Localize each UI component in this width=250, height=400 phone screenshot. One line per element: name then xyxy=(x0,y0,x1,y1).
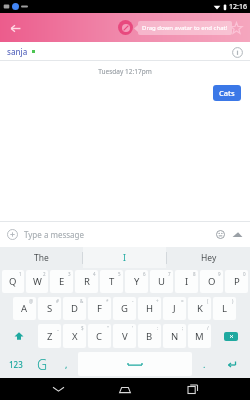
staticText: I xyxy=(123,252,126,264)
staticText: & xyxy=(80,298,84,304)
button[interactable]: G xyxy=(113,297,136,320)
staticText: 2 xyxy=(43,271,46,277)
button[interactable]: , xyxy=(55,352,77,376)
staticText: ; xyxy=(182,325,184,331)
button[interactable]: E xyxy=(50,270,73,293)
button[interactable]: Favorite xyxy=(226,18,246,38)
button[interactable]: 123 xyxy=(1,352,30,376)
staticText: U xyxy=(158,275,165,288)
staticText: * xyxy=(106,298,109,304)
staticText: H xyxy=(146,302,154,315)
button[interactable]: D xyxy=(63,297,86,320)
button[interactable]: J xyxy=(163,297,186,320)
staticText: 9 xyxy=(218,271,221,277)
button[interactable]: Back xyxy=(48,379,68,399)
button[interactable]: W xyxy=(26,270,48,293)
staticText: : xyxy=(157,325,159,331)
staticText: 6 xyxy=(143,271,146,277)
staticText: ) xyxy=(232,298,234,304)
button[interactable]: I xyxy=(83,247,166,268)
button[interactable]: Google voice xyxy=(30,352,55,376)
staticText: 1 xyxy=(19,271,22,277)
staticText: sanja xyxy=(7,46,28,57)
button[interactable]: O xyxy=(200,270,223,293)
button[interactable]: Z xyxy=(38,324,61,348)
button[interactable]: Send xyxy=(231,228,244,241)
button[interactable]: V xyxy=(113,324,136,348)
staticText: , xyxy=(65,358,68,370)
staticText: V xyxy=(122,330,128,343)
button[interactable]: Home xyxy=(115,379,135,399)
button[interactable]: Type a message xyxy=(24,221,214,247)
button[interactable]: F xyxy=(88,297,111,320)
staticText: $ xyxy=(81,325,84,331)
button[interactable]: K xyxy=(188,297,211,320)
staticText: T xyxy=(109,275,115,288)
button[interactable]: sanja xyxy=(7,46,35,57)
staticText: 0 xyxy=(243,271,246,277)
staticText: " xyxy=(107,325,109,331)
button[interactable]: T xyxy=(100,270,123,293)
staticText: - xyxy=(132,298,134,304)
button[interactable]: N xyxy=(163,324,186,348)
button[interactable]: L xyxy=(213,297,236,320)
button[interactable]: H xyxy=(138,297,161,320)
staticText: I xyxy=(185,275,189,288)
button[interactable]: Space xyxy=(78,352,192,376)
staticText: = xyxy=(181,298,184,304)
staticText: X xyxy=(72,330,78,343)
button[interactable]: Q xyxy=(2,270,24,293)
staticText: ' xyxy=(132,325,134,331)
button[interactable]: Recents xyxy=(183,379,203,399)
button[interactable]: S xyxy=(38,297,61,320)
staticText: 5 xyxy=(118,271,121,277)
button[interactable]: Back xyxy=(5,18,25,38)
button[interactable]: P xyxy=(225,270,248,293)
button[interactable]: Emoji xyxy=(214,228,227,241)
staticText: Drag down avatar to end chat! xyxy=(142,24,228,32)
button[interactable]: A xyxy=(13,297,36,320)
button[interactable]: R xyxy=(75,270,98,293)
button[interactable]: Add attachment xyxy=(6,228,19,241)
staticText: _ xyxy=(57,325,59,331)
staticText: S xyxy=(47,302,53,315)
button[interactable]: B xyxy=(138,324,161,348)
staticText: N xyxy=(171,330,179,343)
staticText: 4 xyxy=(93,271,96,277)
button[interactable]: Shift xyxy=(2,324,36,348)
staticText: R xyxy=(84,275,90,288)
staticText: O xyxy=(208,275,216,288)
staticText: 12:16 xyxy=(229,2,247,12)
staticText: 7 xyxy=(168,271,171,277)
button[interactable]: . xyxy=(193,352,215,376)
staticText: P xyxy=(234,275,240,288)
button[interactable]: I xyxy=(175,270,198,293)
button[interactable]: Hey xyxy=(167,247,250,268)
button[interactable]: Info xyxy=(230,45,244,59)
staticText: Q xyxy=(9,275,17,288)
staticText: L xyxy=(222,302,227,315)
staticText: Tuesday 12:17pm xyxy=(0,67,250,76)
button[interactable]: Y xyxy=(125,270,148,293)
staticText: 8 xyxy=(193,271,196,277)
staticText: K xyxy=(197,302,203,315)
staticText: W xyxy=(33,275,42,288)
staticText: J xyxy=(173,302,176,315)
staticText: Cats xyxy=(219,88,235,98)
button[interactable]: U xyxy=(150,270,173,293)
staticText: D xyxy=(71,302,78,315)
button[interactable]: The xyxy=(0,247,82,268)
button[interactable]: M xyxy=(188,324,211,348)
button[interactable]: Backspace xyxy=(213,324,248,348)
staticText: M xyxy=(195,330,204,343)
button[interactable]: X xyxy=(63,324,86,348)
button[interactable]: Avatar xyxy=(118,20,133,35)
button[interactable]: C xyxy=(88,324,111,348)
staticText: 3 xyxy=(68,271,71,277)
staticText: G xyxy=(37,355,48,374)
button[interactable]: Enter xyxy=(215,352,249,376)
staticText: E xyxy=(59,275,65,288)
staticText: Type a message xyxy=(24,229,85,240)
button[interactable]: Cats xyxy=(213,85,241,101)
staticText: # xyxy=(56,298,59,304)
